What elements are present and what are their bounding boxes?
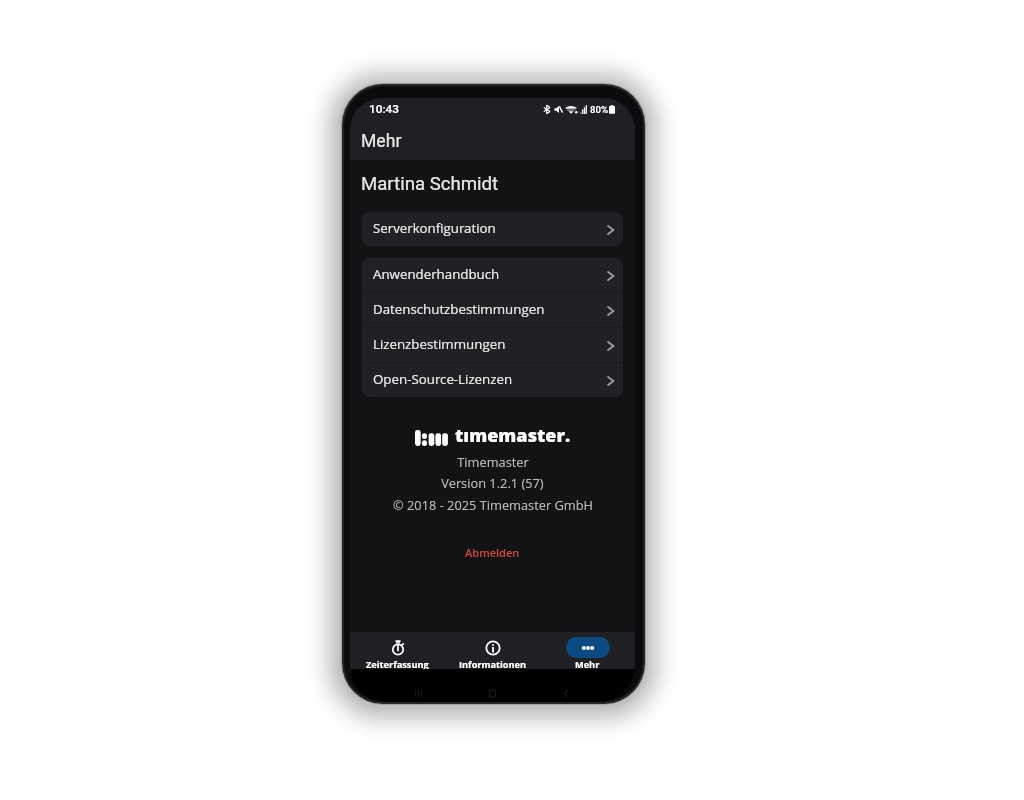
staticText: Informationen bbox=[459, 658, 527, 669]
staticText: Datenschutzbestimmungen bbox=[373, 300, 545, 318]
button[interactable]: Abmelden bbox=[455, 542, 530, 563]
other: Zeiterfassung bbox=[390, 640, 406, 656]
staticText: 10:43 bbox=[369, 102, 399, 116]
button[interactable]: Anwenderhandbuch bbox=[362, 258, 623, 292]
button[interactable]: Datenschutzbestimmungen bbox=[362, 293, 623, 327]
staticText: Zeiterfassung bbox=[366, 658, 429, 669]
button[interactable]: Zeiterfassung bbox=[350, 632, 445, 669]
staticText: Open-Source-Lizenzen bbox=[373, 370, 513, 388]
staticText: Serverkonfiguration bbox=[373, 219, 496, 237]
staticText: Anwenderhandbuch bbox=[373, 265, 500, 283]
staticText: Abmelden bbox=[465, 545, 520, 560]
staticText: © 2018 - 2025 Timemaster GmbH bbox=[393, 496, 593, 513]
staticText: 80% bbox=[590, 104, 608, 115]
staticText: Mehr bbox=[575, 658, 600, 669]
staticText: Lizenzbestimmungen bbox=[373, 335, 506, 353]
button[interactable]: Informationen bbox=[445, 632, 540, 669]
staticText: Mehr bbox=[361, 131, 402, 152]
button[interactable]: Open-Source-Lizenzen bbox=[362, 363, 623, 397]
button[interactable]: Mehr bbox=[540, 632, 635, 669]
button[interactable]: Serverkonfiguration bbox=[362, 212, 623, 246]
staticText: Martina Schmidt bbox=[361, 173, 499, 195]
button[interactable]: Lizenzbestimmungen bbox=[362, 328, 623, 362]
staticText: tımemaster. bbox=[455, 423, 571, 448]
staticText: Version 1.2.1 (57) bbox=[441, 474, 544, 491]
staticText: Timemaster bbox=[457, 453, 529, 470]
other: Mehr bbox=[581, 645, 595, 651]
other: Informationen bbox=[485, 640, 501, 656]
